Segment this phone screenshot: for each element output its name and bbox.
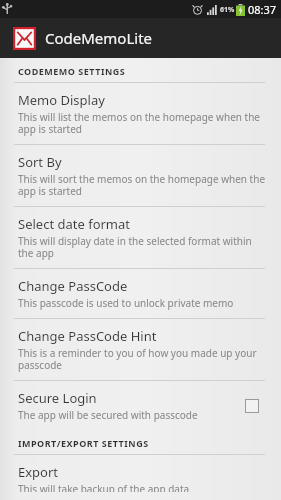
button[interactable]: Export	[0, 455, 281, 500]
staticText: Secure Login	[18, 389, 97, 407]
button[interactable]: Change PassCode	[0, 269, 281, 319]
staticText: IMPORT/EXPORT SETTINGS	[18, 437, 149, 449]
staticText: CodeMemoLite	[45, 28, 153, 48]
staticText: Select date format	[18, 215, 131, 233]
staticText: This will take backup of the app data	[18, 482, 190, 492]
staticText: This will list the memos on the homepage…	[18, 110, 267, 136]
staticText: Memo Display	[18, 91, 105, 109]
staticText: This passcode is used to unlock private …	[18, 296, 234, 310]
button[interactable]: Sort By	[0, 145, 281, 207]
staticText: Sort By	[18, 153, 62, 171]
button[interactable]: Change PassCode Hint	[0, 319, 281, 381]
staticText: Change PassCode	[18, 277, 128, 295]
staticText: This will sort the memos on the homepage…	[18, 172, 267, 198]
staticText: The app will be secured with passcode	[18, 408, 198, 422]
staticText: This is a reminder to you of how you mad…	[18, 346, 267, 372]
button[interactable]: Secure Login toggle	[245, 399, 259, 413]
staticText: Change PassCode Hint	[18, 327, 157, 345]
staticText: CODEMEMO SETTINGS	[18, 65, 126, 77]
button[interactable]: Secure Login	[0, 381, 281, 430]
button[interactable]: Memo Display	[0, 83, 281, 145]
staticText: 08:37	[248, 2, 277, 17]
staticText: Export	[18, 463, 59, 481]
staticText: 61%	[220, 5, 235, 15]
button[interactable]: Select date format	[0, 207, 281, 269]
staticText: This will display date in the selected f…	[18, 234, 267, 260]
